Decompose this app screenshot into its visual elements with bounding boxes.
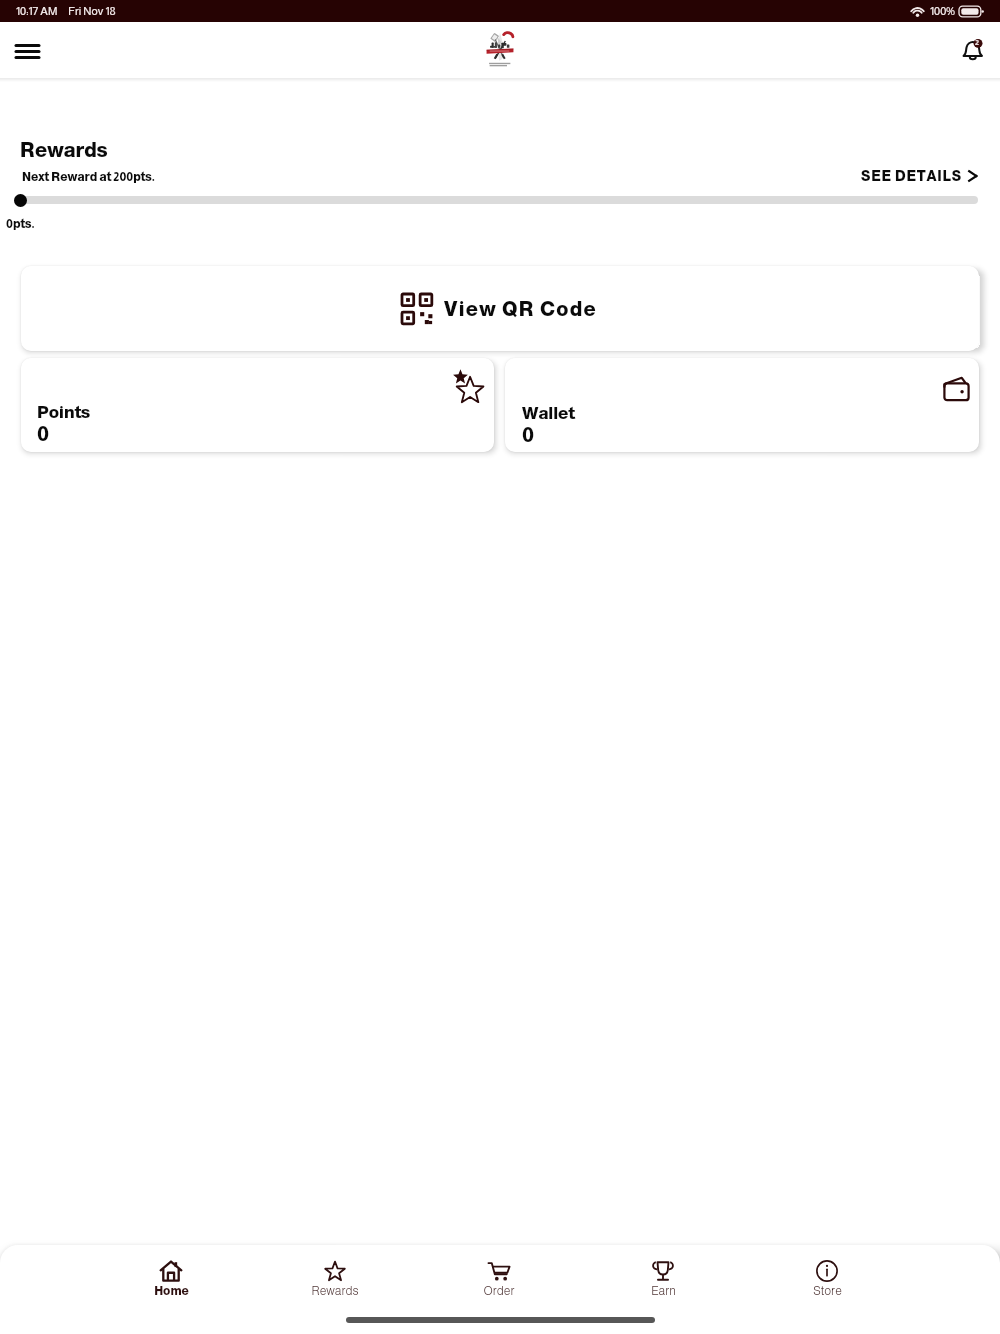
button[interactable]: Order (417, 1260, 581, 1297)
staticText: View QR Code (444, 298, 598, 320)
staticText: Rewards (311, 1284, 359, 1297)
staticText: 0 (37, 422, 50, 445)
staticText: Fri Nov 18 (68, 5, 116, 18)
staticText: Store (813, 1284, 842, 1297)
staticText: SEE DETAILS (861, 168, 962, 184)
button[interactable]: Store (745, 1260, 909, 1297)
staticText: Next Reward at 200pts. (22, 170, 155, 183)
staticText: Rewards (20, 139, 108, 161)
button[interactable]: Wallet (505, 358, 979, 452)
staticText: 0 (522, 423, 535, 446)
button[interactable]: Open navigation menu (5, 28, 49, 72)
button[interactable]: Rewards (253, 1260, 417, 1297)
button[interactable]: Notifications, 2 unread (950, 28, 994, 72)
staticText: 0pts. (6, 217, 35, 230)
button[interactable]: Home (89, 1260, 253, 1297)
staticText: Order (483, 1284, 515, 1297)
staticText: 10:17 AM (16, 5, 58, 18)
button[interactable]: SEE DETAILS (861, 168, 979, 184)
button[interactable]: View QR Code (21, 266, 979, 351)
staticText: 100% (930, 5, 955, 18)
staticText: Earn (651, 1284, 676, 1297)
staticText: Wallet (522, 404, 575, 423)
staticText: 2 (975, 38, 980, 47)
button[interactable]: Earn (581, 1260, 745, 1297)
staticText: Points (37, 403, 91, 422)
staticText: Home (154, 1284, 189, 1297)
button[interactable]: Points (21, 358, 494, 452)
